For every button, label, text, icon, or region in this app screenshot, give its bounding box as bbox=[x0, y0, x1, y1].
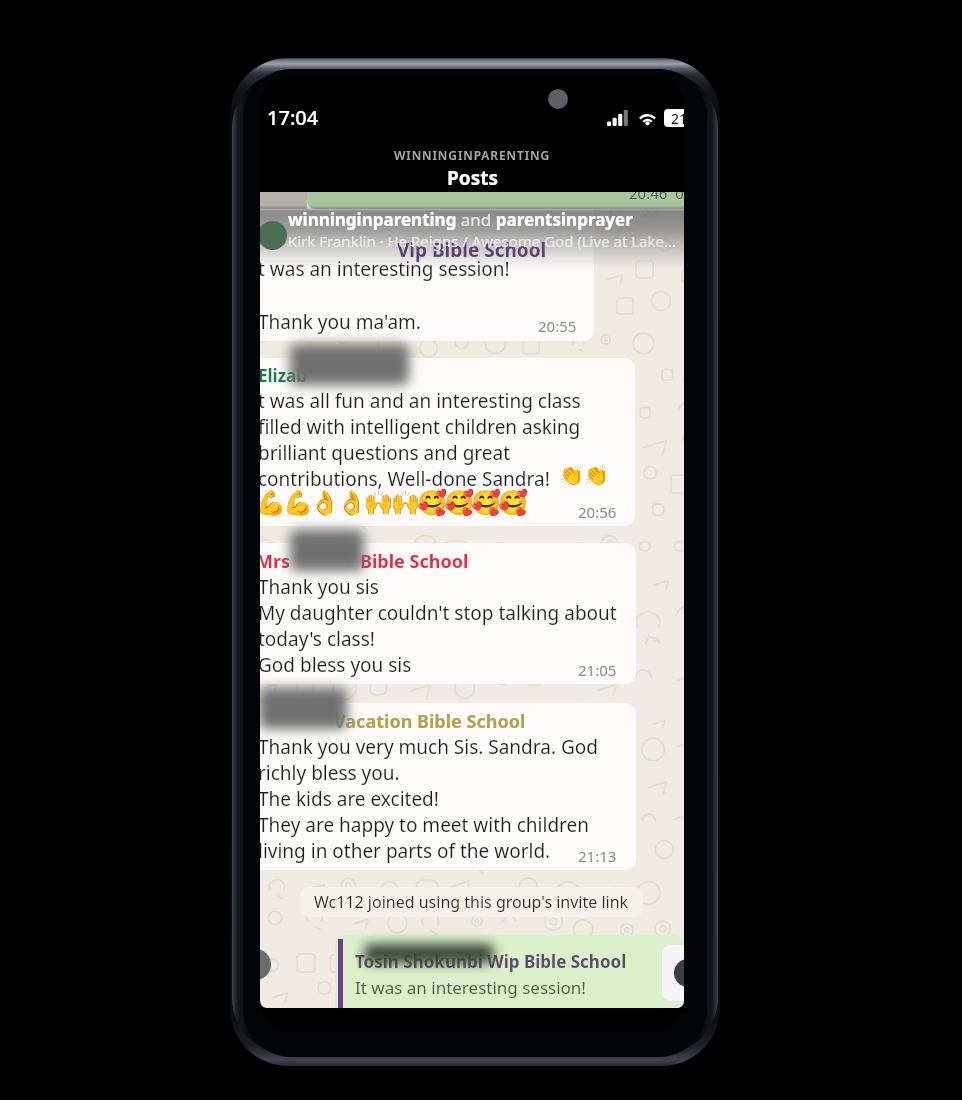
button[interactable] bbox=[260, 196, 594, 341]
staticText: Bible School bbox=[360, 549, 469, 574]
staticText: t was all fun and an interesting class bbox=[260, 388, 581, 414]
button[interactable] bbox=[260, 703, 636, 870]
staticText: They are happy to meet with children bbox=[260, 812, 590, 838]
staticText: 20:55 bbox=[538, 316, 577, 336]
staticText: 21:13 bbox=[578, 846, 617, 866]
button[interactable] bbox=[260, 358, 635, 526]
staticText: WINNINGINPARENTING bbox=[394, 147, 551, 163]
staticText: Vip Bible School bbox=[397, 237, 547, 263]
staticText: Mrs bbox=[260, 549, 291, 574]
staticText: 💪💪👌👌🙌🙌🥰🥰🥰🥰 bbox=[260, 489, 525, 517]
staticText: 21 bbox=[671, 109, 684, 127]
staticText: My daughter couldn't stop talking about bbox=[260, 600, 617, 626]
staticText: It was an interesting session! bbox=[355, 976, 586, 999]
staticText: 👏👏 bbox=[559, 463, 609, 486]
staticText: 20:46 0 bbox=[629, 192, 684, 203]
staticText: Posts bbox=[447, 165, 498, 191]
staticText: brilliant questions and great bbox=[260, 440, 511, 466]
staticText: God bless you sis bbox=[260, 652, 412, 678]
staticText: 21:05 bbox=[578, 660, 617, 680]
staticText: Vacation Bible School bbox=[334, 709, 526, 734]
staticText: filled with intelligent children asking bbox=[260, 414, 581, 440]
staticText: winninginparenting and parentsinprayer bbox=[288, 208, 633, 231]
staticText: The kids are excited! bbox=[260, 786, 439, 812]
button[interactable]: Wc112 joined using this group's invite l… bbox=[300, 887, 643, 917]
staticText: Elizab bbox=[260, 364, 307, 387]
button[interactable]: Profile bbox=[260, 221, 287, 250]
staticText: Kirk Franklin · He Reigns / Awesome God … bbox=[288, 231, 676, 251]
staticText: t was an interesting session! bbox=[260, 256, 510, 282]
staticText: contributions, Well-done Sandra! bbox=[260, 466, 550, 492]
staticText: Tosin Shokunbi Wip Bible School bbox=[355, 950, 627, 973]
button[interactable] bbox=[260, 543, 636, 684]
staticText: Thank you very much Sis. Sandra. God bbox=[260, 734, 598, 760]
staticText: living in other parts of the world. bbox=[260, 838, 551, 864]
staticText: Wc112 joined using this group's invite l… bbox=[314, 891, 629, 913]
button[interactable] bbox=[335, 935, 684, 1008]
staticText: today's class! bbox=[260, 626, 375, 652]
staticText: Thank you ma'am. bbox=[260, 309, 421, 335]
staticText: Thank you sis bbox=[260, 574, 379, 600]
staticText: 20:56 bbox=[578, 502, 617, 522]
staticText: richly bless you. bbox=[260, 760, 400, 786]
staticText: 17:04 bbox=[267, 104, 319, 131]
